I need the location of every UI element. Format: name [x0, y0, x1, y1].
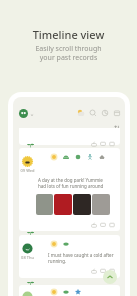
button[interactable]: Search [88, 108, 98, 118]
button[interactable] [19, 235, 120, 278]
button[interactable]: Sort order [112, 123, 122, 133]
button[interactable]: Scroll to top [103, 270, 117, 284]
staticText: I must have caught a cold after running. [48, 252, 114, 264]
button[interactable]: Jun 2020 [53, 125, 85, 134]
button[interactable]: Like [90, 140, 98, 148]
button[interactable]: Like [90, 267, 98, 275]
button[interactable]: More options [108, 140, 116, 148]
button[interactable]: Comment [99, 221, 107, 229]
button[interactable] [18, 108, 35, 119]
staticText: A day at the dog park! Yummie had lots o… [38, 177, 104, 189]
button[interactable]: Photo [54, 194, 72, 215]
button[interactable]: Photo [73, 194, 91, 215]
button[interactable] [19, 148, 120, 231]
button[interactable]: Comment [99, 267, 107, 275]
button[interactable]: Statistics [100, 108, 110, 118]
staticText: 09 Wed [19, 168, 36, 173]
button[interactable]: Photo [92, 194, 110, 215]
button[interactable]: Photo [36, 194, 53, 215]
button[interactable]: Comment [99, 140, 107, 148]
staticText: Easily scroll through your past records [0, 44, 137, 62]
staticText: Timeline view [0, 27, 137, 42]
button[interactable]: Like [90, 221, 98, 229]
button[interactable]: Weather [76, 108, 86, 118]
button[interactable] [19, 285, 120, 296]
button[interactable] [19, 128, 120, 145]
button[interactable]: More options [108, 267, 116, 275]
staticText: 08 Thu [19, 255, 36, 260]
button[interactable]: Calendar [112, 108, 122, 118]
button[interactable]: More options [108, 221, 116, 229]
staticText: Jun 2020 [55, 126, 78, 133]
